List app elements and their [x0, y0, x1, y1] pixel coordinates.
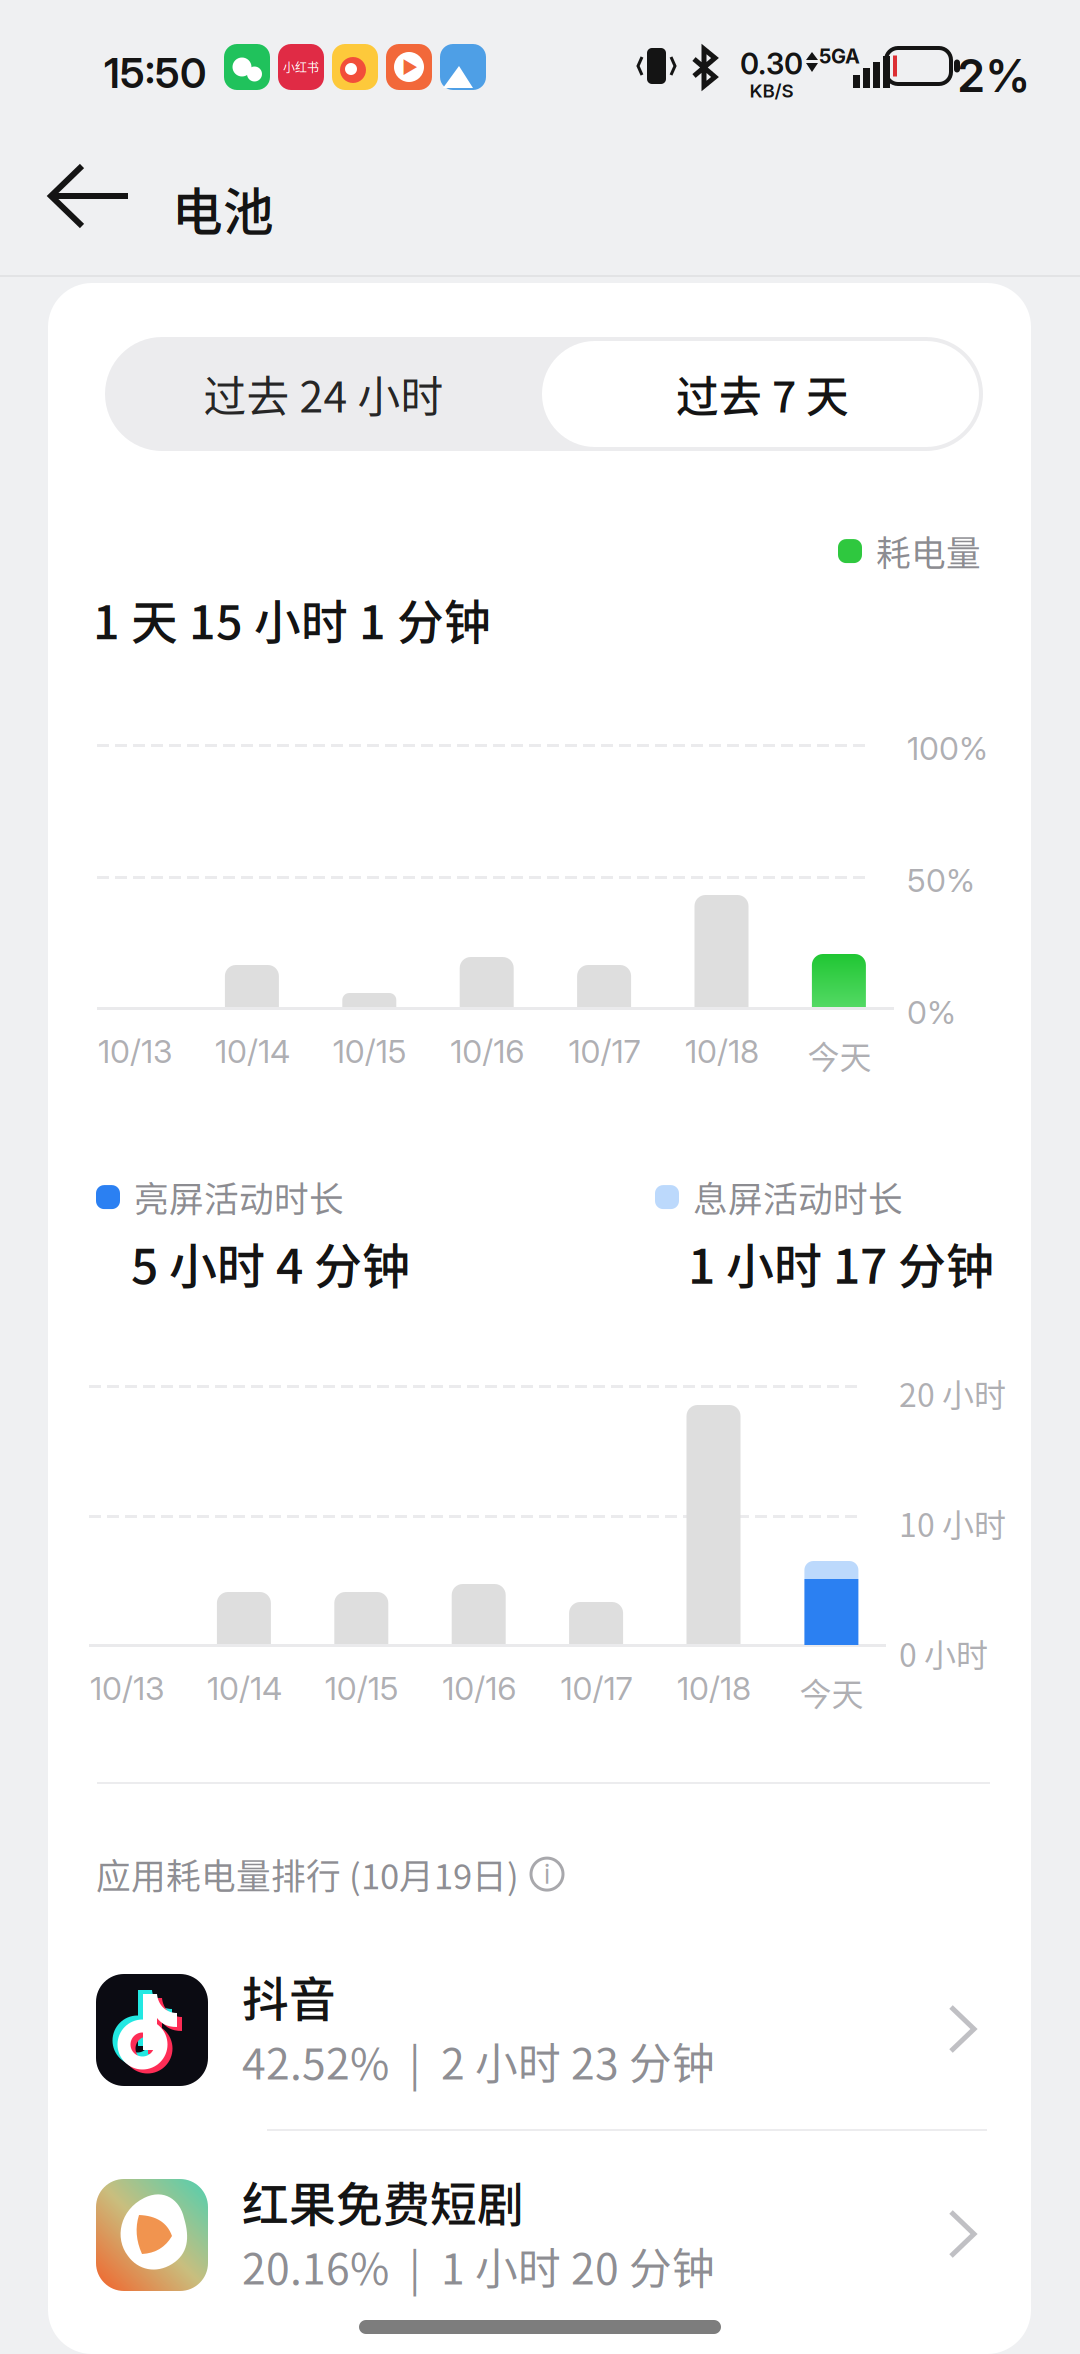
- staticText: 10/13: [98, 1032, 172, 1071]
- staticText: 42.52% | 2 小时 23 分钟: [242, 2030, 715, 2092]
- staticText: 50%: [907, 861, 975, 900]
- staticText: 应用耗电量排行 (10月19日): [96, 1849, 519, 1899]
- staticText: ▶: [402, 56, 418, 77]
- staticText: 15:50: [104, 48, 206, 98]
- staticText: 10/17: [569, 1032, 641, 1071]
- staticText: 10/13: [90, 1669, 164, 1708]
- staticText: 100%: [907, 729, 988, 768]
- staticText: 1 小时 17 分钟: [688, 1228, 994, 1297]
- staticText: 10/18: [685, 1032, 759, 1071]
- staticText: 10/17: [561, 1669, 633, 1708]
- staticText: 过去 7 天: [676, 363, 849, 425]
- staticText: 10/18: [677, 1669, 751, 1708]
- staticText: 耗电量: [876, 526, 981, 576]
- staticText: 过去 24 小时: [203, 363, 443, 425]
- button[interactable]: 抖音: [96, 1974, 980, 2086]
- staticText: 今天: [807, 1032, 871, 1078]
- staticText: 10/16: [450, 1032, 524, 1071]
- staticText: 抖音: [242, 1962, 336, 2030]
- staticText: 10/14: [207, 1669, 282, 1708]
- staticText: 0.30: [740, 46, 803, 81]
- staticText: 电池: [172, 172, 274, 245]
- staticText: 10/15: [333, 1032, 407, 1071]
- staticText: 红果免费短剧: [242, 2167, 524, 2235]
- staticText: 2%: [957, 48, 1031, 103]
- button[interactable]: 红果免费短剧: [96, 2179, 980, 2291]
- staticText: 5 小时 4 分钟: [131, 1228, 410, 1297]
- staticText: 息屏活动时长: [693, 1172, 903, 1222]
- button[interactable]: Back: [44, 158, 136, 234]
- staticText: 亮屏活动时长: [134, 1172, 344, 1222]
- staticText: 10/16: [442, 1669, 516, 1708]
- button[interactable]: 过去 24 小时: [105, 337, 542, 451]
- staticText: 1 天 15 小时 1 分钟: [93, 585, 491, 653]
- staticText: KB/S: [749, 79, 793, 102]
- staticText: 今天: [799, 1669, 863, 1715]
- staticText: 5GA: [819, 44, 860, 68]
- button[interactable]: 过去 7 天: [542, 337, 983, 451]
- staticText: 0 小时: [899, 1630, 988, 1676]
- staticText: 10 小时: [899, 1500, 1006, 1546]
- staticText: 10/14: [215, 1032, 290, 1071]
- staticText: i: [544, 1858, 550, 1890]
- staticText: 小红书: [283, 58, 319, 76]
- staticText: 20 小时: [899, 1370, 1006, 1416]
- staticText: 0%: [907, 993, 956, 1032]
- staticText: 10/15: [325, 1669, 399, 1708]
- staticText: 20.16% | 1 小时 20 分钟: [242, 2235, 715, 2297]
